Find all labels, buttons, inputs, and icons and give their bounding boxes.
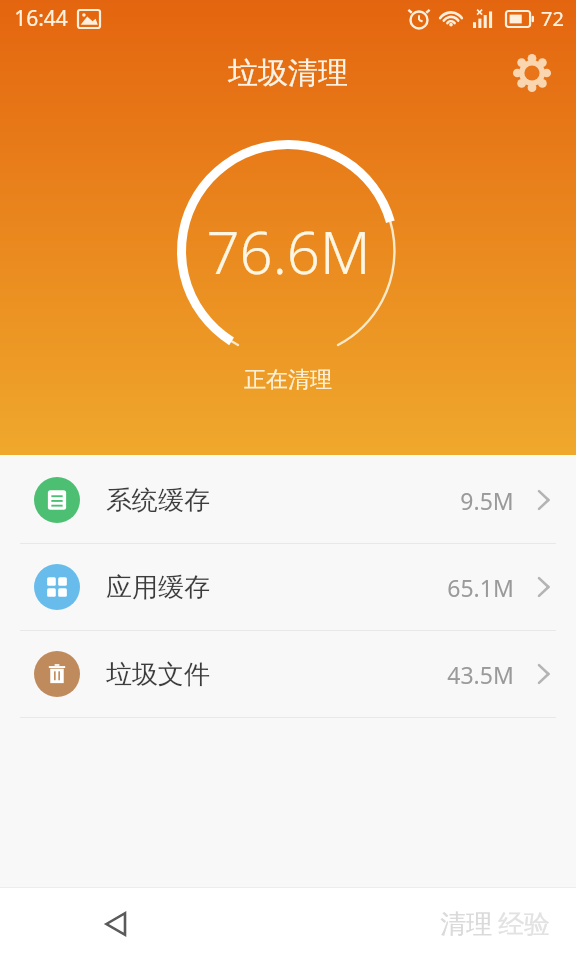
staticText: 72 (541, 5, 564, 32)
button[interactable]: Back (88, 896, 144, 952)
staticText: 65.1M (447, 572, 514, 603)
staticText: 16:44 (14, 4, 68, 33)
button[interactable]: 应用缓存 (0, 544, 576, 630)
staticText: 垃圾文件 (106, 658, 210, 691)
staticText: 垃圾清理 (228, 54, 348, 92)
staticText: 应用缓存 (106, 571, 210, 604)
button[interactable]: 系统缓存 (0, 457, 576, 543)
staticText: 9.5M (460, 485, 514, 516)
staticText: 正在清理 (244, 366, 332, 394)
staticText: 76.6M (206, 212, 371, 291)
button[interactable]: Settings (506, 47, 558, 99)
staticText: 系统缓存 (106, 484, 210, 517)
staticText: 清理 (440, 908, 492, 941)
staticText: 经验 (498, 908, 550, 941)
staticText: 43.5M (447, 659, 514, 690)
button[interactable]: 垃圾文件 (0, 631, 576, 717)
